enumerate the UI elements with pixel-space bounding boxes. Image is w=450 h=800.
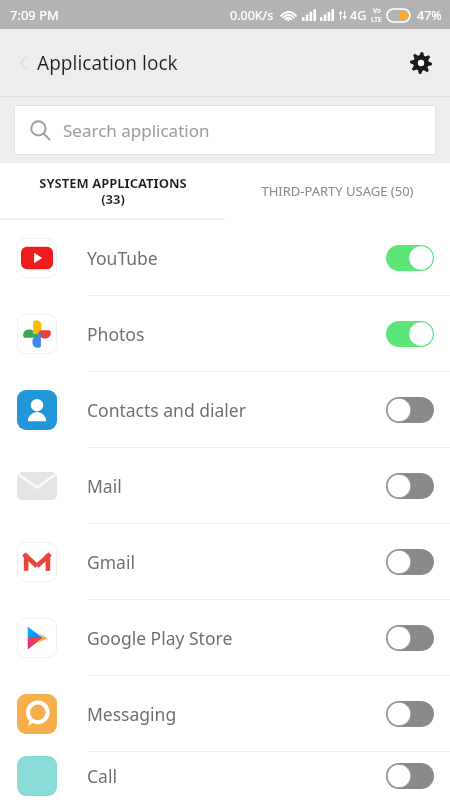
button[interactable]: Lock disabled (384, 623, 436, 653)
staticText: 47% (417, 7, 442, 24)
staticText: Search application (63, 119, 210, 142)
button[interactable]: Settings (400, 42, 442, 84)
staticText: 7:09 PM (10, 6, 59, 24)
staticText: LTE (371, 15, 382, 24)
button[interactable]: SYSTEM APPLICATIONS (33) (0, 163, 225, 218)
button[interactable]: Contacts and dialer (0, 372, 450, 447)
button[interactable]: Lock disabled (384, 761, 436, 791)
button[interactable]: Gmail (0, 524, 450, 599)
staticText: Call (87, 764, 384, 788)
button[interactable]: Messaging (0, 676, 450, 751)
staticText: Google Play Store (87, 626, 384, 650)
button[interactable]: Search application (14, 105, 436, 155)
staticText: Vo (373, 6, 381, 15)
staticText: THIRD-PARTY USAGE (50) (261, 182, 414, 200)
button[interactable]: THIRD-PARTY USAGE (50) (225, 163, 450, 218)
staticText: Messaging (87, 702, 384, 726)
button[interactable]: Lock enabled (384, 243, 436, 273)
staticText: SYSTEM APPLICATIONS (33) (39, 174, 187, 207)
button[interactable]: Lock enabled (384, 319, 436, 349)
staticText: YouTube (87, 246, 384, 270)
button[interactable]: Lock disabled (384, 699, 436, 729)
staticText: Gmail (87, 550, 384, 574)
staticText: Photos (87, 322, 384, 346)
staticText: Contacts and dialer (87, 398, 384, 422)
staticText: Mail (87, 474, 384, 498)
button[interactable]: Call (0, 752, 450, 800)
button[interactable]: YouTube (0, 220, 450, 295)
button[interactable]: Back (4, 43, 44, 83)
button[interactable]: Mail (0, 448, 450, 523)
staticText: 0.00K/s (230, 7, 274, 24)
button[interactable]: Lock disabled (384, 547, 436, 577)
button[interactable]: Lock disabled (384, 471, 436, 501)
staticText: 4G (350, 7, 367, 24)
button[interactable]: Lock disabled (384, 395, 436, 425)
button[interactable]: Photos (0, 296, 450, 371)
staticText: Application lock (37, 50, 178, 76)
button[interactable]: Google Play Store (0, 600, 450, 675)
